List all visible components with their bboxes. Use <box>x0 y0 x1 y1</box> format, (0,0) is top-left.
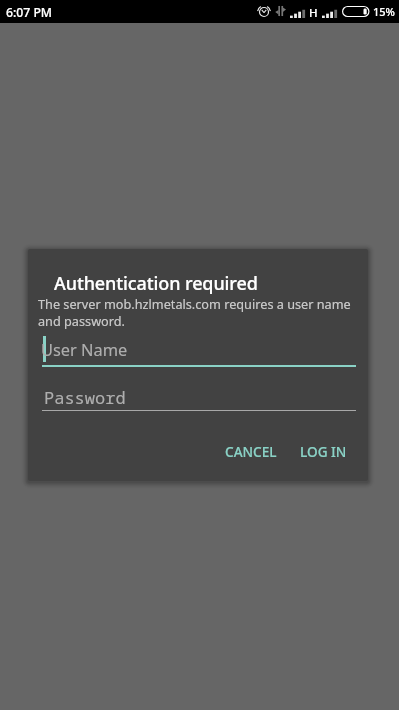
staticText: User Name <box>41 338 128 360</box>
staticText: The server mob.hzlmetals.com requires a … <box>38 295 364 330</box>
other: Battery 15 percent <box>342 6 370 17</box>
other: Data transfer <box>275 5 286 17</box>
button[interactable]: CANCEL <box>217 433 285 469</box>
button[interactable]: LOG IN <box>292 433 355 469</box>
other: Mobile signal <box>322 7 336 18</box>
staticText: Authentication required <box>54 271 258 296</box>
staticText: Password <box>44 386 126 409</box>
staticText: H <box>309 5 318 21</box>
other: Mobile signal <box>290 7 304 18</box>
button[interactable]: Password <box>42 380 356 411</box>
button[interactable]: Dismiss dialog <box>0 0 399 710</box>
staticText: 15% <box>373 4 395 19</box>
other: Alarm set <box>258 5 270 17</box>
button[interactable]: User Name <box>42 333 356 367</box>
staticText: CANCEL <box>225 442 277 461</box>
staticText: LOG IN <box>300 442 347 461</box>
staticText: 6:07 PM <box>6 4 53 21</box>
